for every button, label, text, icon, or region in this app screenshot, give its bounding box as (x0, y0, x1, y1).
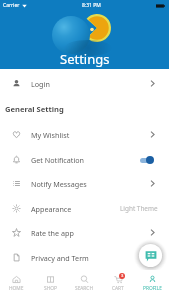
staticText: My Wishlist (31, 130, 70, 140)
staticText: Carrier (3, 2, 20, 9)
button[interactable]: Rate the app (0, 220, 169, 245)
button[interactable]: CART (101, 270, 135, 296)
button[interactable]: Login (0, 71, 169, 96)
staticText: PROFILE (143, 285, 162, 292)
staticText: Login (31, 79, 50, 89)
staticText: Notify Messages (31, 179, 87, 189)
staticText: HOME (9, 285, 24, 292)
staticText: SEARCH (75, 285, 93, 292)
button[interactable]: PROFILE (135, 270, 169, 296)
button[interactable]: Appearance (0, 196, 169, 221)
button[interactable]: SEARCH (67, 270, 101, 296)
button[interactable]: HOME (0, 270, 33, 296)
staticText: General Setting (5, 104, 64, 114)
button[interactable]: SHOP (33, 270, 67, 296)
button[interactable]: My Wishlist (0, 122, 169, 147)
staticText: Get Notification (31, 155, 85, 165)
button[interactable]: Chat (136, 241, 165, 270)
button[interactable]: Get Notification (0, 147, 169, 172)
staticText: 3 (121, 273, 124, 279)
staticText: SHOP (44, 285, 57, 292)
staticText: Light Theme (120, 204, 158, 213)
button[interactable]: Notify Messages (0, 171, 169, 196)
staticText: CART (112, 285, 124, 292)
staticText: Appearance (31, 204, 72, 214)
staticText: Rate the app (31, 228, 74, 238)
staticText: Settings (60, 50, 110, 68)
staticText: Privacy and Term (31, 253, 89, 263)
staticText: 8:31 PM (82, 2, 101, 9)
button[interactable]: Privacy and Term (0, 245, 169, 270)
